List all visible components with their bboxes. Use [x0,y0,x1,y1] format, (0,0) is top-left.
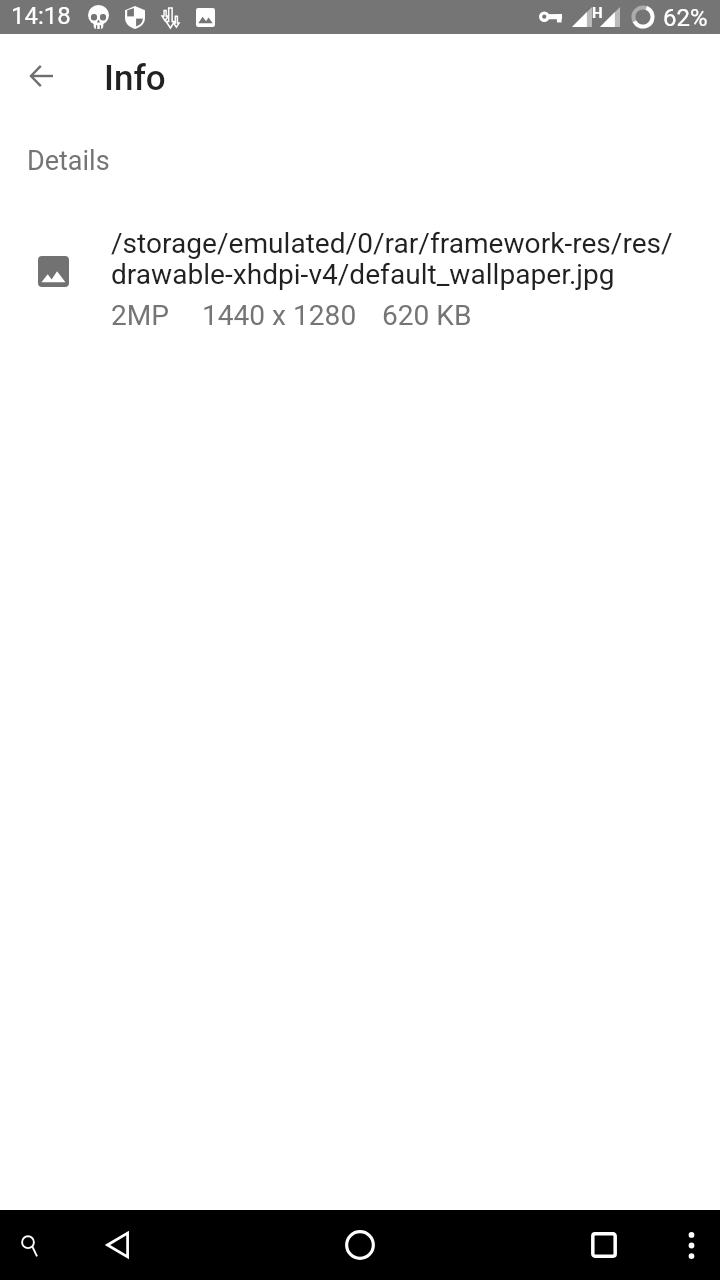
staticText: 620 KB [382,300,472,331]
staticText: H [592,4,603,22]
staticText: 62% [663,4,708,32]
button[interactable]: Back [94,1221,142,1269]
button[interactable]: Recent apps [580,1221,628,1269]
button[interactable]: Home [336,1221,384,1269]
button[interactable]: Navigate up [13,48,69,104]
staticText: Details [27,145,110,177]
staticText: 2MP [111,300,170,331]
staticText: 1440 x 1280 [202,300,357,331]
button[interactable]: More options [667,1221,715,1269]
staticText: Info [104,58,166,99]
staticText: /storage/emulated/0/rar/framework-res/re… [111,228,696,290]
button[interactable]: /storage/emulated/0/rar/framework-res/re… [0,228,720,331]
staticText: 14:18 [11,2,71,30]
button[interactable]: Search [5,1221,53,1269]
